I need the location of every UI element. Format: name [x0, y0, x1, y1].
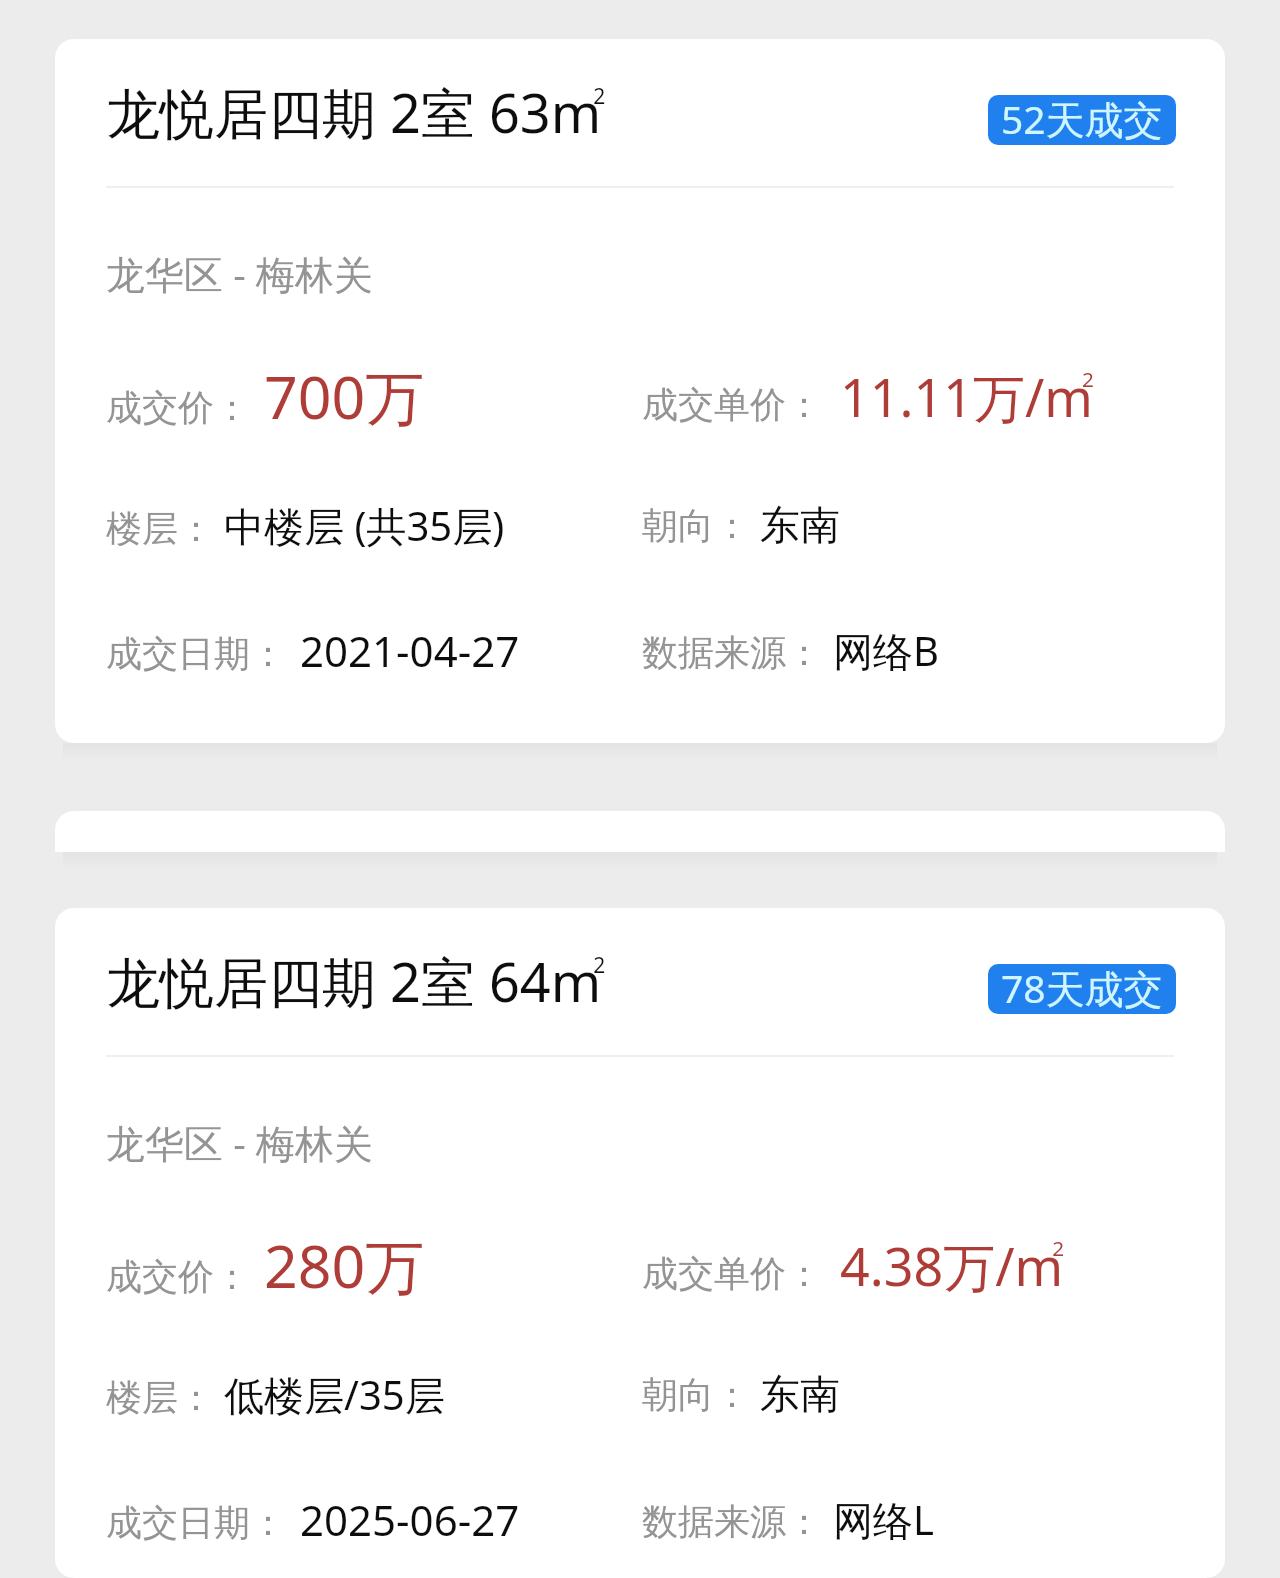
button[interactable]: 52天成交	[988, 95, 1176, 145]
staticText: 成交价：	[106, 1254, 250, 1299]
staticText: 数据来源：	[642, 1499, 822, 1544]
staticText: 中楼层 (共35层)	[224, 498, 505, 553]
staticText: 2025-06-27	[300, 1491, 520, 1548]
staticText: 280万	[264, 1225, 425, 1305]
staticText: 龙华区 - 梅林关	[106, 1116, 373, 1168]
staticText: 低楼层/35层	[224, 1367, 445, 1422]
staticText: 楼层：	[106, 506, 214, 551]
button[interactable]: 龙悦居四期 2室 64m2	[55, 908, 1225, 1578]
staticText: 成交日期：	[106, 631, 286, 676]
staticText: 朝向：	[642, 1372, 750, 1417]
staticText: 成交单价：	[642, 1251, 822, 1296]
staticText: 2021-04-27	[300, 622, 520, 679]
staticText: 11.11万/m2	[840, 361, 1094, 432]
staticText: 龙悦居四期 2室 64m2	[106, 944, 606, 1012]
staticText: 4.38万/m2	[840, 1230, 1065, 1301]
button[interactable]: 龙悦居四期 2室 63m2	[55, 39, 1225, 743]
staticText: 78天成交	[1001, 964, 1163, 1011]
staticText: 成交日期：	[106, 1500, 286, 1545]
staticText: 数据来源：	[642, 630, 822, 675]
staticText: 朝向：	[642, 503, 750, 548]
staticText: 龙悦居四期 2室 63m2	[106, 75, 606, 143]
staticText: 东南	[760, 1369, 840, 1419]
staticText: 楼层：	[106, 1375, 214, 1420]
staticText: 网络B	[833, 623, 939, 678]
staticText: 52天成交	[1001, 95, 1163, 142]
staticText: 网络L	[833, 1492, 934, 1547]
staticText: 龙华区 - 梅林关	[106, 247, 373, 299]
staticText: 成交价：	[106, 385, 250, 430]
staticText: 700万	[264, 356, 425, 436]
staticText: 东南	[760, 500, 840, 550]
staticText: 成交单价：	[642, 382, 822, 427]
button[interactable]: 78天成交	[988, 964, 1176, 1014]
